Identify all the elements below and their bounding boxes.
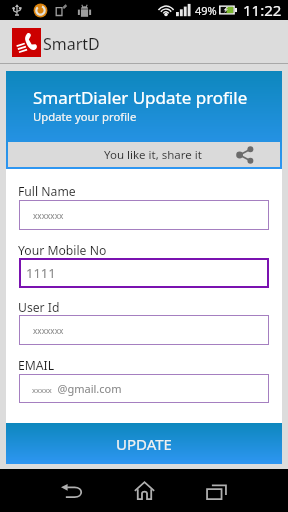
- staticText: xxxxxxx: [33, 325, 64, 336]
- button[interactable]: UPDATE: [6, 423, 282, 464]
- staticText: SmartDialer Update profile: [33, 86, 248, 109]
- staticText: Full Name: [18, 183, 76, 200]
- button[interactable]: Back: [50, 469, 94, 512]
- staticText: UPDATE: [116, 434, 172, 454]
- button[interactable]: xxxxxxx: [19, 200, 269, 230]
- staticText: Update your profile: [33, 109, 137, 124]
- staticText: EMAIL: [18, 357, 55, 374]
- staticText: SmartD: [43, 33, 100, 55]
- staticText: 49%: [195, 3, 217, 18]
- other: Share: [236, 146, 254, 164]
- button[interactable]: Home: [122, 469, 166, 512]
- staticText: xxxxxxx: [33, 210, 64, 221]
- staticText: 1111: [26, 264, 56, 282]
- staticText: 11:22: [243, 0, 282, 20]
- button[interactable]: xxxxxxx: [19, 315, 269, 345]
- staticText: Your Mobile No: [18, 242, 107, 259]
- staticText: User Id: [18, 299, 60, 316]
- staticText: xxxxx @gmail.com: [32, 381, 122, 396]
- button[interactable]: 1111: [19, 258, 269, 288]
- button[interactable]: Recent apps: [194, 469, 238, 512]
- button[interactable]: You like it, share it: [8, 142, 280, 167]
- button[interactable]: xxxxx @gmail.com: [19, 374, 269, 403]
- staticText: You like it, share it: [104, 147, 202, 163]
